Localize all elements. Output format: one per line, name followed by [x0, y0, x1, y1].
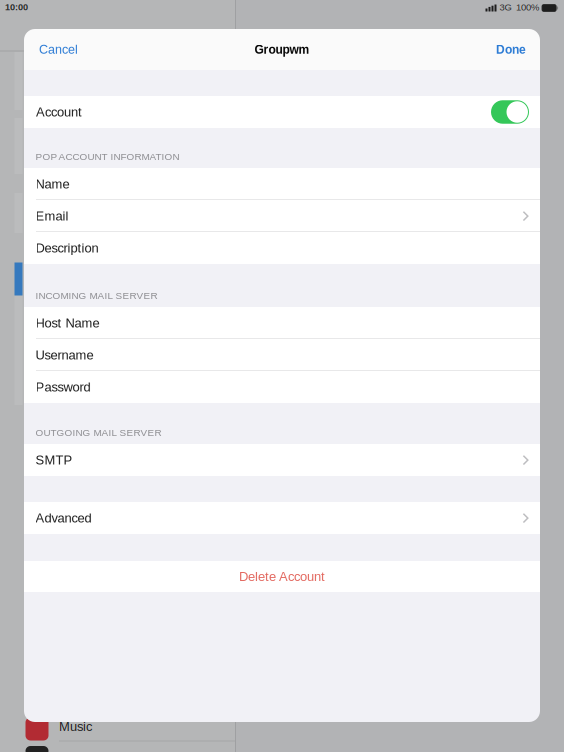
button[interactable]: Done [492, 35, 530, 64]
staticText: Username [35, 348, 93, 362]
staticText: 100% [516, 2, 539, 12]
staticText: Email [35, 209, 68, 223]
staticText: Advanced [35, 511, 91, 525]
button[interactable]: Password [24, 371, 540, 403]
staticText: Music [59, 719, 92, 734]
staticText: Done [496, 43, 526, 56]
button[interactable]: Name [24, 168, 540, 200]
staticText: Account [36, 105, 82, 119]
staticText: Groupwm [254, 43, 309, 56]
button[interactable]: Description [24, 232, 540, 264]
button[interactable]: Delete Account [24, 561, 540, 592]
staticText: Cancel [39, 42, 78, 56]
staticText: POP ACCOUNT INFORMATION [35, 151, 179, 162]
button[interactable]: Host Name [24, 307, 540, 339]
staticText: INCOMING MAIL SERVER [35, 290, 157, 301]
staticText: 10:00 [5, 2, 28, 12]
staticText: Host Name [35, 316, 99, 330]
button[interactable]: Advanced [24, 502, 540, 534]
staticText: Password [35, 380, 90, 394]
staticText: Name [35, 177, 69, 191]
staticText: Delete Account [239, 569, 325, 584]
button[interactable]: Username [24, 339, 540, 371]
button[interactable]: SMTP [24, 444, 540, 476]
button[interactable]: Cancel [35, 34, 82, 64]
staticText: SMTP [35, 453, 72, 467]
staticText: OUTGOING MAIL SERVER [35, 427, 161, 438]
staticText: Description [35, 241, 98, 255]
button[interactable]: Email [24, 200, 540, 232]
staticText: 3G [499, 2, 511, 12]
button[interactable]: Account [24, 96, 540, 128]
